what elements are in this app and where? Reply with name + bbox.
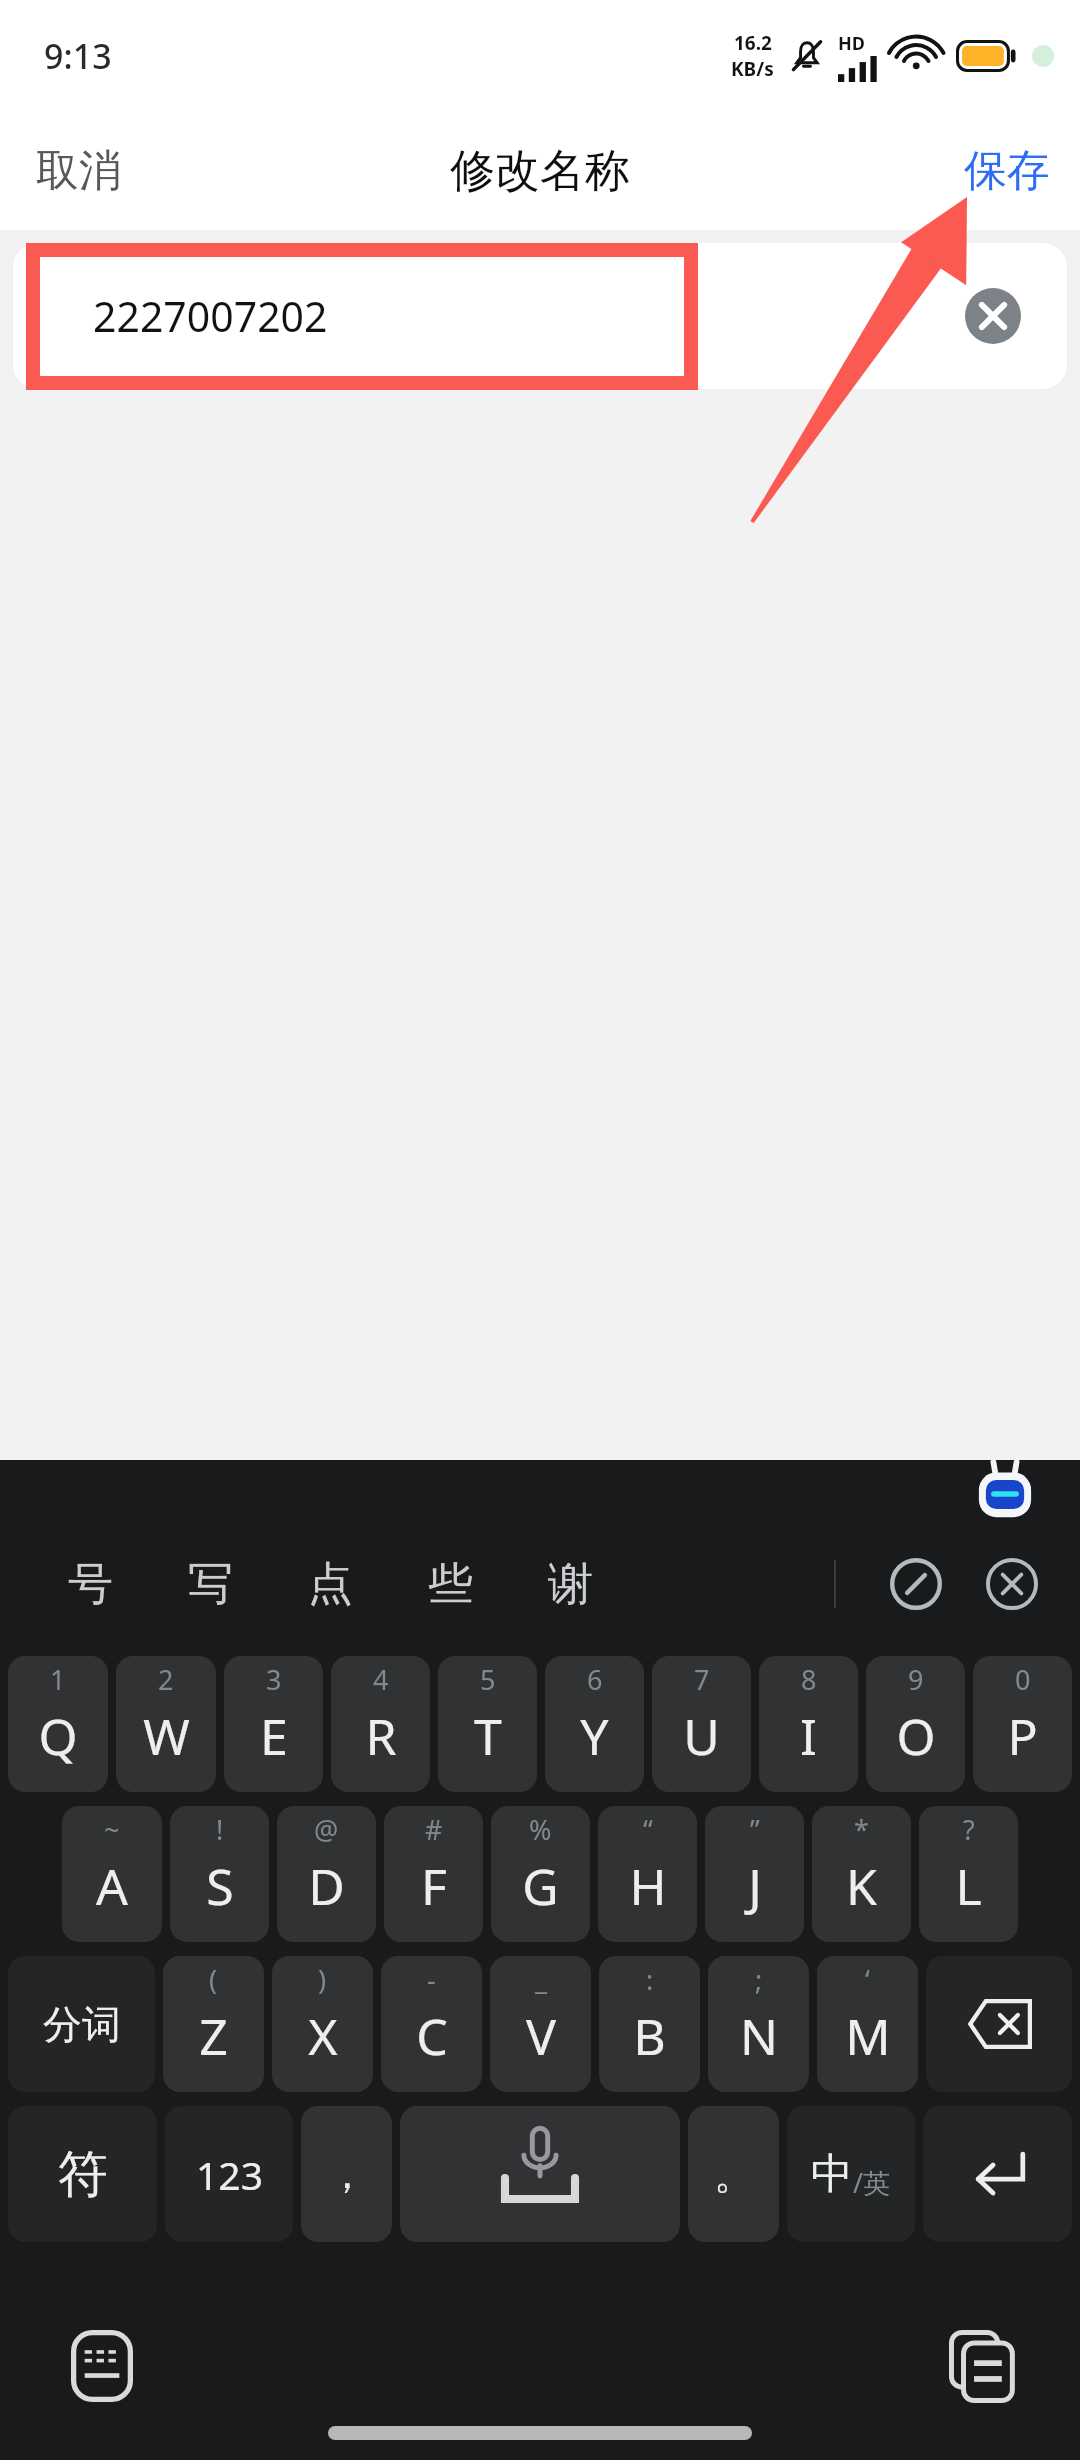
button[interactable]: 2: [116, 1656, 216, 1792]
button[interactable]: 7: [652, 1656, 751, 1792]
staticText: /英: [853, 2164, 891, 2201]
staticText: _: [535, 1961, 547, 1998]
staticText: HD: [838, 31, 865, 56]
button[interactable]: Space: [400, 2106, 680, 2242]
button[interactable]: 分词: [8, 1956, 155, 2092]
button[interactable]: Clear text: [965, 288, 1021, 344]
button[interactable]: ‘: [817, 1956, 918, 2092]
staticText: ): [318, 1961, 327, 1998]
button[interactable]: Clipboard: [946, 2330, 1018, 2402]
button[interactable]: 2227007202: [13, 243, 1067, 389]
button[interactable]: Backspace: [926, 1956, 1072, 2092]
staticText: 中: [811, 2148, 853, 2201]
button[interactable]: 0: [973, 1656, 1072, 1792]
staticText: R: [365, 1702, 397, 1770]
staticText: KB/s: [731, 56, 774, 82]
staticText: 分词: [43, 2000, 121, 2049]
button[interactable]: !: [170, 1806, 269, 1942]
staticText: 点: [308, 1556, 353, 1613]
staticText: C: [416, 2002, 448, 2070]
staticText: 123: [196, 2148, 263, 2201]
staticText: 8: [801, 1661, 817, 1698]
button[interactable]: 取消: [0, 112, 158, 230]
button[interactable]: 1: [8, 1656, 108, 1792]
staticText: X: [308, 2002, 338, 2070]
button[interactable]: 中: [787, 2106, 915, 2242]
button[interactable]: 3: [224, 1656, 323, 1792]
staticText: “: [643, 1811, 653, 1848]
staticText: 谢: [548, 1556, 593, 1613]
button[interactable]: @: [277, 1806, 376, 1942]
button[interactable]: AI assistant: [976, 1462, 1034, 1524]
button[interactable]: Enter: [923, 2106, 1072, 2242]
staticText: 。: [714, 2149, 754, 2199]
button[interactable]: Undo: [882, 1550, 950, 1618]
staticText: 写: [188, 1556, 233, 1613]
staticText: H: [629, 1852, 667, 1920]
staticText: P: [1007, 1702, 1038, 1770]
button[interactable]: 。: [688, 2106, 779, 2242]
staticText: 2227007202: [93, 288, 328, 344]
button[interactable]: ，: [301, 2106, 392, 2242]
button[interactable]: %: [491, 1806, 590, 1942]
staticText: 6: [587, 1661, 603, 1698]
button[interactable]: #: [384, 1806, 483, 1942]
staticText: 0: [1015, 1661, 1031, 1698]
button[interactable]: 号: [30, 1526, 150, 1642]
staticText: ~: [104, 1811, 120, 1848]
button[interactable]: 谢: [510, 1526, 630, 1642]
staticText: %: [529, 1811, 552, 1848]
staticText: #: [425, 1811, 443, 1848]
staticText: Q: [38, 1702, 78, 1770]
button[interactable]: 4: [331, 1656, 430, 1792]
staticText: 9: [908, 1661, 924, 1698]
button[interactable]: 5: [438, 1656, 537, 1792]
button[interactable]: 保存: [934, 112, 1080, 230]
button[interactable]: (: [163, 1956, 264, 2092]
button[interactable]: ?: [919, 1806, 1018, 1942]
button[interactable]: ): [272, 1956, 373, 2092]
staticText: ;: [755, 1961, 763, 1998]
staticText: U: [683, 1702, 720, 1770]
staticText: ”: [750, 1811, 760, 1848]
staticText: F: [421, 1852, 447, 1920]
staticText: 9:13: [44, 33, 112, 79]
staticText: *: [854, 1811, 869, 1848]
staticText: W: [143, 1702, 190, 1770]
button[interactable]: Switch keyboard: [66, 2330, 138, 2402]
button[interactable]: 123: [165, 2106, 293, 2242]
button[interactable]: 些: [390, 1526, 510, 1642]
button[interactable]: 符: [8, 2106, 157, 2242]
staticText: N: [740, 2002, 778, 2070]
button[interactable]: *: [812, 1806, 911, 1942]
button[interactable]: 6: [545, 1656, 644, 1792]
staticText: 5: [480, 1661, 496, 1698]
button[interactable]: 8: [759, 1656, 858, 1792]
staticText: 1: [50, 1661, 66, 1698]
button[interactable]: :: [599, 1956, 700, 2092]
staticText: ‘: [865, 1961, 870, 1998]
staticText: @: [314, 1811, 339, 1848]
staticText: J: [748, 1852, 762, 1920]
staticText: K: [846, 1852, 877, 1920]
staticText: 3: [266, 1661, 282, 1698]
button[interactable]: 写: [150, 1526, 270, 1642]
button[interactable]: Close keyboard: [978, 1550, 1046, 1618]
button[interactable]: _: [490, 1956, 591, 2092]
button[interactable]: 9: [866, 1656, 965, 1792]
staticText: B: [633, 2002, 666, 2070]
button[interactable]: -: [381, 1956, 482, 2092]
staticText: 号: [68, 1556, 113, 1613]
staticText: 保存: [964, 144, 1050, 198]
staticText: 取消: [36, 144, 122, 198]
staticText: T: [474, 1702, 502, 1770]
staticText: V: [526, 2002, 556, 2070]
button[interactable]: “: [598, 1806, 697, 1942]
staticText: 7: [694, 1661, 710, 1698]
staticText: O: [896, 1702, 936, 1770]
button[interactable]: ”: [705, 1806, 804, 1942]
button[interactable]: ~: [62, 1806, 162, 1942]
button[interactable]: ;: [708, 1956, 809, 2092]
button[interactable]: 点: [270, 1526, 390, 1642]
staticText: 些: [428, 1556, 473, 1613]
